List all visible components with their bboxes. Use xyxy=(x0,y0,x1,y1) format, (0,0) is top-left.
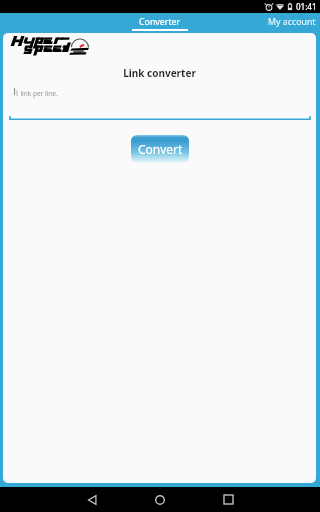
staticText: Link converter xyxy=(3,66,316,80)
button[interactable]: Recent apps xyxy=(208,487,248,512)
button[interactable]: Convert xyxy=(131,135,189,163)
button[interactable]: Converter xyxy=(132,13,188,31)
button[interactable]: Home xyxy=(140,487,180,512)
staticText: Convert xyxy=(138,141,183,157)
button[interactable]: My account xyxy=(268,16,316,28)
button[interactable]: Back xyxy=(72,487,112,512)
staticText: Converter xyxy=(139,16,181,28)
staticText: 01:41 xyxy=(296,1,317,12)
staticText: My account xyxy=(268,16,316,28)
staticText: 1 link per line. xyxy=(15,89,58,98)
